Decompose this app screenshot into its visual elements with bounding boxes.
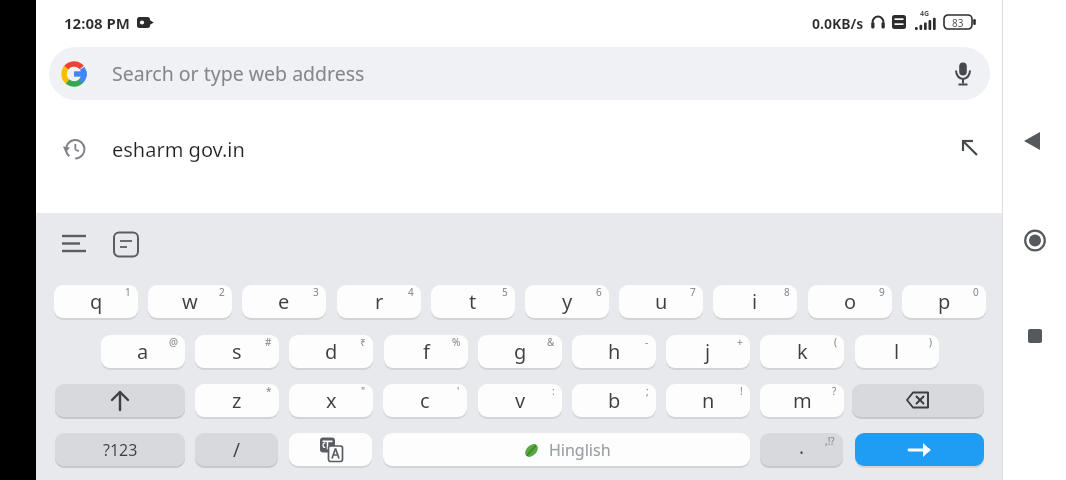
button[interactable]: q	[54, 285, 138, 318]
button[interactable]: j	[666, 335, 750, 368]
staticText: +	[737, 335, 743, 349]
button[interactable]	[1021, 227, 1049, 254]
staticText: v	[515, 387, 526, 414]
button[interactable]	[113, 232, 140, 257]
staticText: y	[562, 288, 573, 315]
staticText: 6	[596, 285, 602, 299]
staticText: @	[169, 335, 178, 349]
staticText: h	[608, 338, 621, 365]
staticText: i	[752, 288, 758, 315]
button[interactable]	[36, 122, 1002, 176]
staticText: (	[834, 335, 837, 349]
staticText: d	[325, 338, 338, 365]
staticText: f	[423, 338, 430, 365]
staticText: o	[844, 288, 857, 315]
button[interactable]: l	[855, 335, 939, 368]
staticText: esharm gov.in	[112, 136, 245, 163]
staticText: 5	[502, 285, 508, 299]
staticText: Search or type web address	[112, 60, 365, 87]
staticText: 1	[125, 285, 131, 299]
button[interactable]: r	[337, 285, 421, 318]
staticText: .	[799, 434, 805, 460]
staticText: 83	[952, 16, 964, 30]
staticText: q	[90, 288, 103, 315]
button[interactable]: m	[760, 384, 844, 417]
button[interactable]	[1022, 323, 1048, 349]
staticText: "	[361, 384, 366, 398]
staticText: k	[797, 338, 808, 365]
button[interactable]: t	[431, 285, 515, 318]
button[interactable]: s	[195, 335, 279, 368]
staticText: 12:08 PM	[64, 13, 130, 33]
staticText: ₹	[360, 335, 366, 349]
staticText: 7	[690, 285, 696, 299]
staticText: ;	[646, 384, 649, 398]
button[interactable]: y	[525, 285, 609, 318]
button[interactable]: n	[666, 384, 750, 417]
staticText: /	[233, 437, 241, 463]
staticText: !	[740, 384, 743, 398]
staticText: x	[326, 387, 337, 414]
button[interactable]: f	[384, 335, 468, 368]
button[interactable]: v	[478, 384, 562, 417]
staticText: *	[266, 384, 272, 398]
staticText: a	[137, 338, 149, 365]
button[interactable]: i	[713, 285, 797, 318]
staticText: ,!?	[825, 434, 835, 448]
staticText: 0.0KB/s	[812, 14, 864, 33]
staticText: m	[793, 387, 812, 414]
button[interactable]: Search or type web address	[49, 47, 990, 100]
button[interactable]: w	[148, 285, 232, 318]
button[interactable]: c	[383, 384, 467, 417]
button[interactable]	[55, 384, 185, 417]
staticText: j	[705, 338, 711, 365]
button[interactable]: p	[902, 285, 986, 318]
staticText: b	[608, 387, 621, 414]
button[interactable]: .	[760, 433, 843, 466]
button[interactable]	[289, 433, 372, 466]
staticText: u	[655, 288, 668, 315]
staticText: 0	[973, 285, 979, 299]
button[interactable]: e	[242, 285, 326, 318]
button[interactable]: b	[572, 384, 656, 417]
button[interactable]: /	[195, 433, 278, 466]
button[interactable]	[852, 384, 984, 417]
button[interactable]: k	[760, 335, 844, 368]
staticText: 4	[408, 285, 414, 299]
staticText: s	[232, 338, 242, 365]
staticText: Hinglish	[549, 439, 611, 461]
button[interactable]: o	[808, 285, 892, 318]
staticText: n	[702, 387, 715, 414]
staticText: 2	[219, 285, 225, 299]
staticText: ?123	[103, 439, 138, 461]
button[interactable]: ?123	[55, 433, 185, 466]
button[interactable]: a	[101, 335, 185, 368]
staticText: 4G	[920, 9, 930, 19]
staticText: r	[375, 288, 384, 315]
staticText: 8	[784, 285, 790, 299]
staticText: '	[457, 384, 460, 398]
button[interactable]	[1020, 128, 1048, 154]
staticText: t	[469, 288, 477, 315]
staticText: -	[645, 335, 649, 349]
button[interactable]: z	[195, 384, 279, 417]
staticText: e	[278, 288, 290, 315]
staticText: 9	[879, 285, 885, 299]
staticText: l	[894, 338, 900, 365]
staticText: g	[514, 338, 527, 365]
button[interactable]: x	[289, 384, 373, 417]
button[interactable]: Hinglish	[383, 433, 750, 466]
button[interactable]: u	[619, 285, 703, 318]
staticText: ?	[832, 384, 837, 398]
button[interactable]: h	[572, 335, 656, 368]
staticText: %	[452, 335, 461, 349]
staticText: 3	[313, 285, 319, 299]
staticText: &	[547, 335, 555, 349]
staticText: )	[929, 335, 932, 349]
staticText: p	[938, 288, 951, 315]
staticText: w	[182, 288, 198, 315]
button[interactable]: g	[478, 335, 562, 368]
button[interactable]	[855, 433, 984, 466]
button[interactable]: d	[289, 335, 373, 368]
staticText: #	[265, 335, 272, 349]
